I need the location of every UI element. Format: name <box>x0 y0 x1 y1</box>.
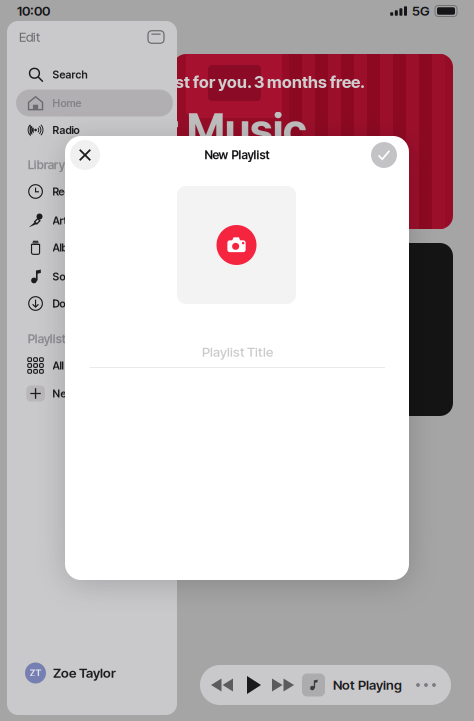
button[interactable]: More <box>409 665 443 705</box>
staticText: New Playlist <box>53 387 111 400</box>
staticText: r Music <box>162 104 307 156</box>
button[interactable]: Done <box>368 139 400 171</box>
staticText: Downloaded <box>53 297 113 310</box>
staticText: Library <box>28 157 65 172</box>
button[interactable]: New Playlist <box>16 380 173 407</box>
staticText: Albums <box>53 241 88 254</box>
button[interactable]: Hide Sidebar <box>143 24 169 50</box>
staticText: New Playlist <box>204 148 269 162</box>
button[interactable]: Edit <box>19 27 59 47</box>
staticText: Zoe Taylor <box>53 665 116 681</box>
button[interactable]: Close <box>68 138 102 172</box>
button[interactable]: Home <box>16 89 173 116</box>
button[interactable]: Recently Added <box>16 178 173 205</box>
staticText: Artists <box>53 214 84 227</box>
button[interactable]: ZT <box>25 658 165 688</box>
staticText: Recently Added <box>53 185 128 198</box>
button[interactable]: Search <box>16 61 173 88</box>
staticText: All Playlists <box>53 359 104 372</box>
staticText: 10:00 <box>17 3 50 19</box>
button[interactable]: Play <box>238 665 270 705</box>
button[interactable]: Radio <box>16 116 173 143</box>
staticText: ZT <box>29 667 41 679</box>
staticText: Edit <box>19 29 40 45</box>
staticText: Not Playing <box>333 677 402 693</box>
staticText: Playlist Title <box>202 344 273 360</box>
button[interactable]: Artists <box>16 207 173 234</box>
button[interactable]: Rewind <box>205 665 239 705</box>
staticText: Radio <box>53 123 80 136</box>
staticText: 5G <box>412 3 430 19</box>
staticText: st for you. 3 months free. <box>175 72 365 92</box>
button[interactable]: Fast Forward <box>266 665 300 705</box>
button[interactable]: Not Playing <box>302 665 400 705</box>
button[interactable]: Add Artwork <box>177 186 296 304</box>
button[interactable]: Downloaded <box>16 290 173 317</box>
staticText: Playlists <box>28 331 72 346</box>
button[interactable]: Songs <box>16 263 173 290</box>
staticText: Search <box>53 68 88 81</box>
button[interactable]: All Playlists <box>16 352 173 379</box>
staticText: Songs <box>53 270 83 283</box>
button[interactable]: Albums <box>16 234 173 261</box>
staticText: Home <box>53 96 82 109</box>
